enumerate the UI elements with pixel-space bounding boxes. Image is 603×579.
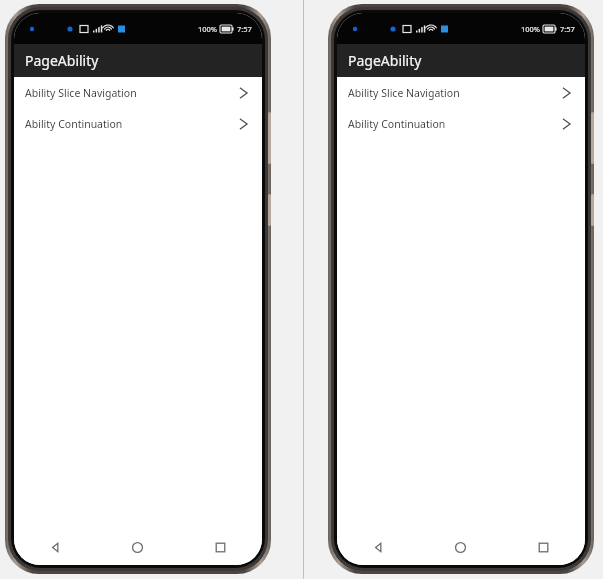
- staticText: 7:57: [560, 24, 575, 34]
- staticText: Ability Continuation: [348, 117, 446, 131]
- staticText: PageAbility: [25, 51, 99, 70]
- button[interactable]: Ability Slice Navigation: [14, 77, 262, 108]
- button[interactable]: Home: [419, 529, 502, 565]
- button[interactable]: Ability Continuation: [14, 108, 262, 139]
- staticText: Ability Slice Navigation: [25, 86, 137, 100]
- staticText: 100%: [198, 24, 218, 34]
- staticText: 7:57: [237, 24, 252, 34]
- button[interactable]: Back: [14, 529, 96, 565]
- button[interactable]: Back: [337, 529, 419, 565]
- button[interactable]: Ability Continuation: [337, 108, 585, 139]
- staticText: PageAbility: [348, 51, 422, 70]
- button[interactable]: Recents: [179, 529, 262, 565]
- button[interactable]: Recents: [502, 529, 585, 565]
- button[interactable]: Home: [96, 529, 179, 565]
- staticText: 100%: [521, 24, 541, 34]
- button[interactable]: Ability Slice Navigation: [337, 77, 585, 108]
- staticText: Ability Continuation: [25, 117, 123, 131]
- staticText: Ability Slice Navigation: [348, 86, 460, 100]
